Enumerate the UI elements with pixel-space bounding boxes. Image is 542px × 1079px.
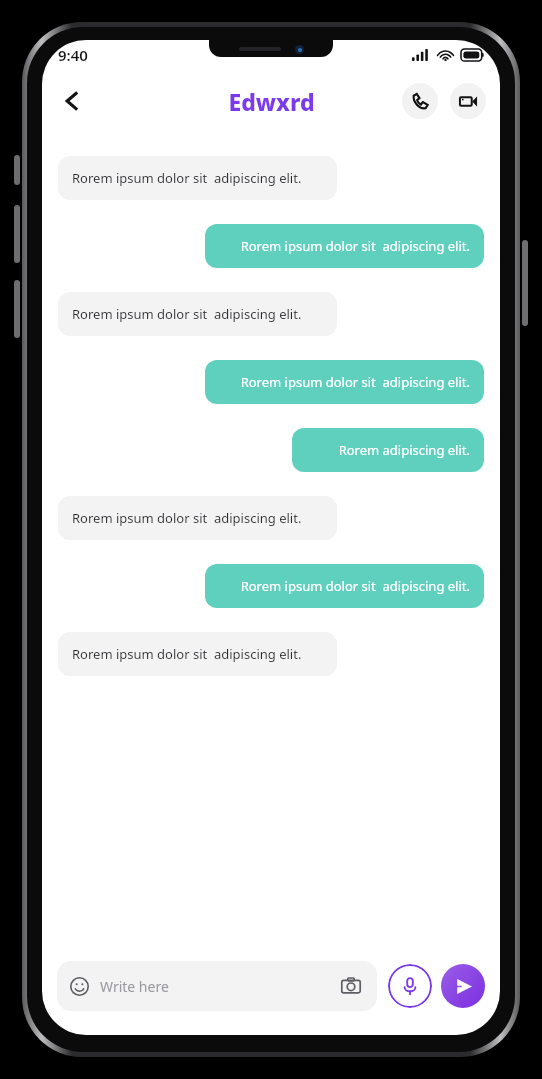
staticText: 9:40 — [58, 45, 88, 65]
button[interactable]: Voice call — [402, 83, 438, 119]
button[interactable]: Rorem ipsum dolor sit adipiscing elit. — [58, 156, 337, 200]
staticText: Rorem ipsum dolor sit adipiscing elit. — [72, 509, 302, 527]
button[interactable]: Camera — [338, 973, 364, 999]
button[interactable]: Rorem ipsum dolor sit adipiscing elit. — [205, 360, 484, 404]
button[interactable]: Rorem ipsum dolor sit adipiscing elit. — [58, 632, 337, 676]
button[interactable]: Rorem ipsum dolor sit adipiscing elit. — [205, 224, 484, 268]
button[interactable]: Write here — [57, 961, 377, 1011]
staticText: Edwxrd — [228, 86, 315, 117]
button[interactable]: Rorem ipsum dolor sit adipiscing elit. — [58, 292, 337, 336]
staticText: Rorem ipsum dolor sit adipiscing elit. — [72, 169, 302, 187]
button[interactable]: Rorem ipsum dolor sit adipiscing elit. — [58, 496, 337, 540]
staticText: Rorem ipsum dolor sit adipiscing elit. — [72, 305, 302, 323]
staticText: Rorem adipiscing elit. — [338, 441, 470, 459]
staticText: Rorem ipsum dolor sit adipiscing elit. — [72, 645, 302, 663]
button[interactable]: Rorem ipsum dolor sit adipiscing elit. — [205, 564, 484, 608]
button[interactable]: Video call — [450, 83, 486, 119]
button[interactable]: Send — [441, 964, 485, 1008]
button[interactable]: Record voice message — [388, 964, 432, 1008]
staticText: Rorem ipsum dolor sit adipiscing elit. — [240, 373, 470, 391]
button[interactable]: Rorem adipiscing elit. — [292, 428, 484, 472]
staticText: Write here — [100, 977, 169, 996]
staticText: Rorem ipsum dolor sit adipiscing elit. — [240, 237, 470, 255]
staticText: Rorem ipsum dolor sit adipiscing elit. — [240, 577, 470, 595]
button[interactable]: Back — [50, 79, 94, 123]
